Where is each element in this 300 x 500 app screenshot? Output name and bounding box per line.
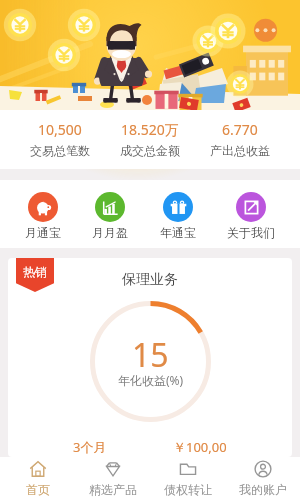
- button[interactable]: 我的账户: [225, 457, 300, 500]
- other: 首页: [29, 460, 47, 478]
- button[interactable]: 精选产品: [75, 457, 150, 500]
- staticText: 18.520万: [121, 120, 179, 139]
- staticText: 交易总笔数: [30, 143, 90, 158]
- staticText: ￥100,00: [173, 438, 227, 456]
- staticText: 保理业务: [122, 271, 178, 289]
- staticText: 产出总收益: [210, 143, 270, 158]
- staticText: 15: [132, 333, 169, 377]
- button[interactable]: 保理业务: [8, 258, 292, 457]
- staticText: 我的账户: [239, 482, 287, 497]
- staticText: 热销: [23, 264, 47, 279]
- staticText: 月月盈: [92, 225, 128, 240]
- button[interactable]: 债权转让: [150, 457, 225, 500]
- staticText: 月通宝: [25, 225, 61, 240]
- button[interactable]: 年通宝: [154, 190, 202, 242]
- staticText: 精选产品: [89, 482, 137, 497]
- staticText: 首页: [26, 482, 50, 497]
- button[interactable]: 关于我们: [221, 190, 281, 242]
- other: 精选产品: [104, 460, 122, 478]
- button[interactable]: 月月盈: [86, 190, 134, 242]
- button[interactable]: 首页: [0, 457, 75, 500]
- button[interactable]: 月通宝: [19, 190, 67, 242]
- staticText: 年通宝: [160, 225, 196, 240]
- staticText: 10,500: [38, 120, 82, 139]
- other: 债权转让: [179, 460, 197, 478]
- staticText: 成交总金额: [120, 143, 180, 158]
- staticText: 3个月: [73, 438, 107, 456]
- staticText: 债权转让: [164, 482, 212, 497]
- staticText: 关于我们: [227, 225, 275, 240]
- staticText: 6.770: [222, 120, 258, 139]
- staticText: 年化收益(%): [118, 372, 184, 388]
- other: 我的账户: [254, 460, 272, 478]
